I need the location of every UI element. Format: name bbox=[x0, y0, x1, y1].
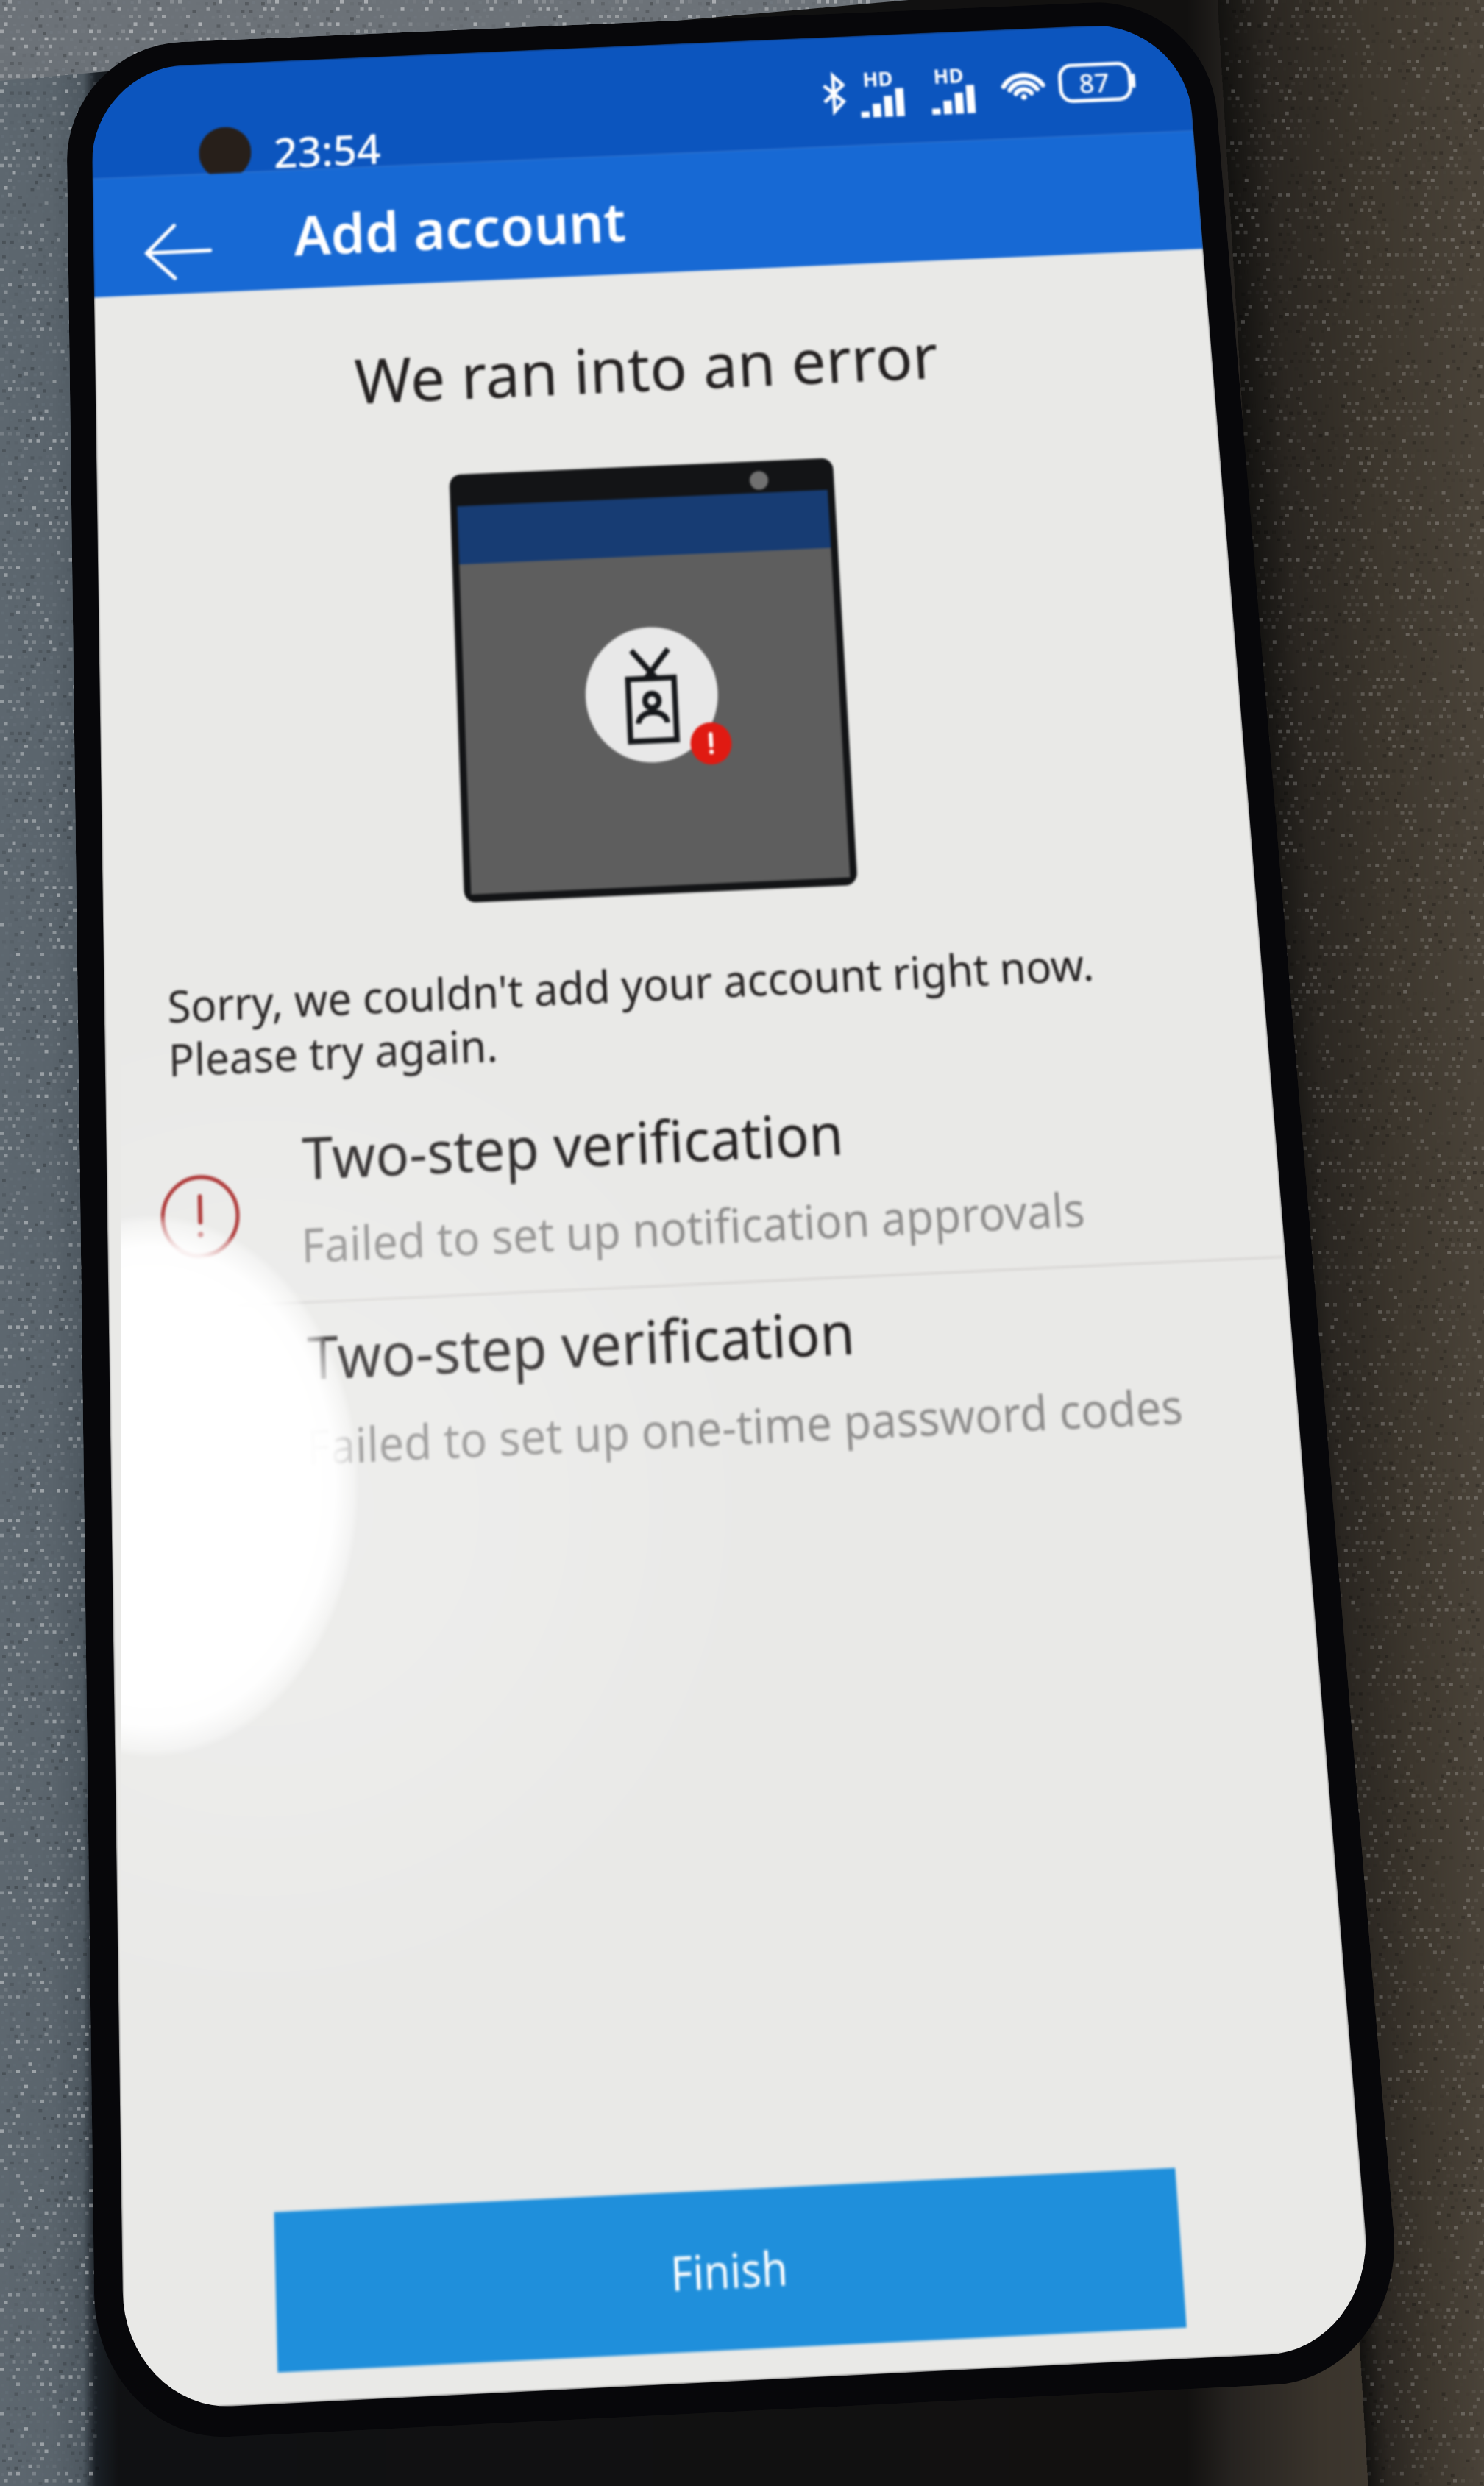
staticText: Failed to set up notification approvals bbox=[301, 1176, 1087, 1277]
staticText: Sorry, we couldn't add your account righ… bbox=[167, 931, 1148, 1090]
staticText: Finish bbox=[669, 2234, 790, 2305]
button[interactable]: Two-step verification bbox=[106, 1073, 1285, 1306]
staticText: 87 bbox=[1078, 64, 1111, 101]
staticText: We ran into an error bbox=[353, 312, 941, 422]
staticText: 23:54 bbox=[273, 120, 382, 181]
button[interactable]: Finish bbox=[274, 2168, 1187, 2373]
staticText: Failed to set up one-time password codes bbox=[306, 1372, 1185, 1479]
staticText: Two-step verification bbox=[301, 1093, 845, 1197]
button[interactable]: Back bbox=[114, 186, 242, 318]
staticText: HD bbox=[932, 61, 965, 89]
staticText: Two-step verification bbox=[306, 1291, 857, 1397]
staticText: HD bbox=[862, 64, 894, 92]
staticText: Add account bbox=[293, 183, 628, 272]
button[interactable]: Two-step verification bbox=[109, 1271, 1302, 1510]
